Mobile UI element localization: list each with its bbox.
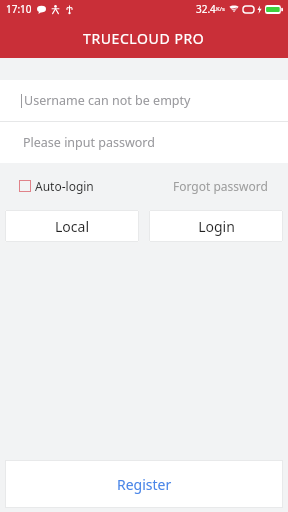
button[interactable]: Local bbox=[5, 210, 139, 242]
staticText: Username can not be empty bbox=[24, 92, 191, 109]
button[interactable]: Please input password bbox=[0, 122, 288, 163]
button[interactable]: Auto-login bbox=[18, 175, 95, 197]
button[interactable]: Login bbox=[149, 210, 283, 242]
staticText: Login bbox=[198, 217, 235, 236]
staticText: K/s bbox=[216, 5, 225, 13]
staticText: Register bbox=[117, 475, 172, 494]
button[interactable]: Username can not be empty bbox=[0, 80, 288, 121]
staticText: Auto-login bbox=[35, 178, 94, 194]
staticText: TRUECLOUD PRO bbox=[83, 29, 205, 48]
staticText: Please input password bbox=[23, 134, 155, 151]
staticText: Local bbox=[55, 217, 89, 236]
staticText: Forgot password bbox=[173, 178, 268, 194]
button[interactable]: Register bbox=[5, 460, 283, 508]
button[interactable]: Forgot password bbox=[171, 175, 270, 197]
staticText: 17:10 bbox=[6, 2, 32, 16]
staticText: 32.4 bbox=[196, 2, 216, 16]
